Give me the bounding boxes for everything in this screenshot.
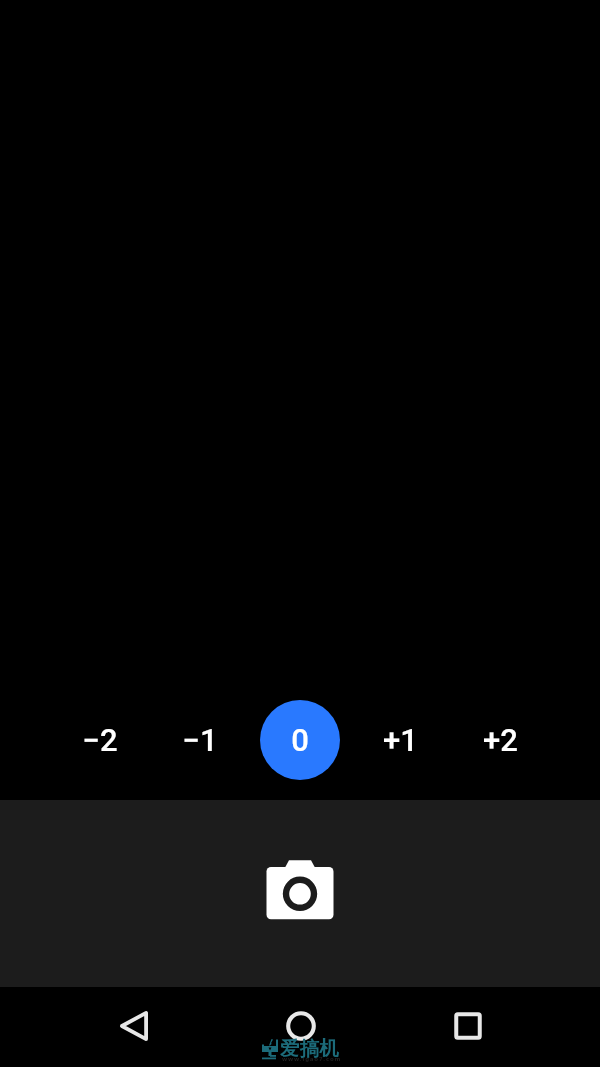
staticText: 爱搞机 [280, 1036, 339, 1061]
button[interactable]: Take photo [252, 845, 348, 941]
staticText: −2 [82, 722, 118, 758]
button[interactable]: 0 [260, 700, 340, 780]
button[interactable]: Home [271, 996, 331, 1056]
staticText: www.igao7.com [282, 1055, 342, 1063]
staticText: +2 [483, 722, 518, 758]
button[interactable]: −2 [60, 700, 140, 780]
button[interactable]: +1 [360, 700, 440, 780]
staticText: −1 [182, 722, 218, 758]
staticText: 0 [291, 722, 309, 758]
staticText: +1 [383, 722, 418, 758]
button[interactable]: Back [104, 996, 164, 1056]
button[interactable]: −1 [160, 700, 240, 780]
button[interactable]: +2 [460, 700, 540, 780]
button[interactable]: Recent apps [438, 996, 498, 1056]
